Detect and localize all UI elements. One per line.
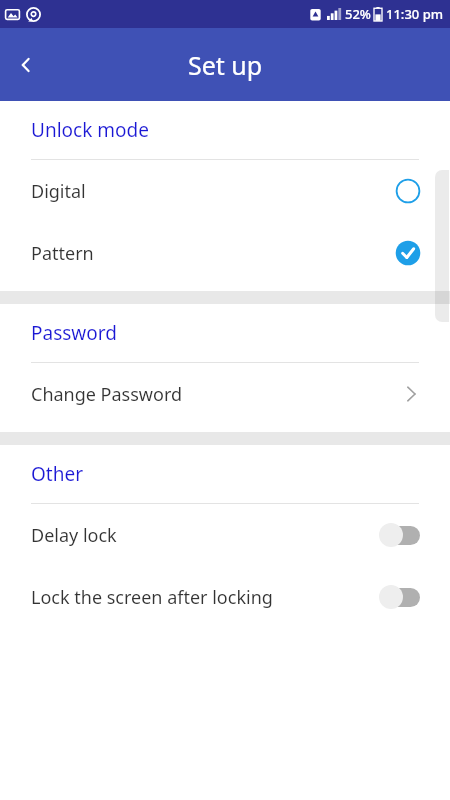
button[interactable]: Back xyxy=(0,39,52,91)
staticText: Lock the screen after locking xyxy=(31,585,273,610)
staticText: Pattern xyxy=(31,241,94,266)
staticText: Delay lock xyxy=(31,523,117,548)
staticText: 11:30 pm xyxy=(386,5,444,23)
staticText: Digital xyxy=(31,179,86,204)
button[interactable]: Delay lock xyxy=(0,504,450,566)
button[interactable]: Digital xyxy=(0,160,450,222)
button[interactable]: Lock the screen after locking xyxy=(0,566,450,628)
button[interactable]: Change Password xyxy=(0,363,450,425)
staticText: Unlock mode xyxy=(31,117,149,143)
button[interactable]: Pattern xyxy=(0,222,450,284)
staticText: Set up xyxy=(0,48,450,82)
staticText: 52% xyxy=(345,5,371,23)
staticText: Change Password xyxy=(31,382,183,407)
staticText: Other xyxy=(31,461,84,487)
staticText: Password xyxy=(31,320,117,346)
